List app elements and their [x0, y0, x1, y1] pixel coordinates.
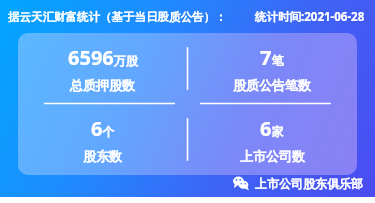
staticText: 股东数 [83, 148, 122, 164]
staticText: 据云天汇财富统计（基于当日股质公告）： [8, 10, 227, 24]
button[interactable]: 6家 [187, 104, 357, 175]
staticText: 统计时间:2021-06-28 [255, 9, 365, 25]
staticText: 6个 [91, 115, 115, 142]
staticText: 股质公告笔数 [233, 77, 311, 93]
staticText: 上市公司数 [240, 148, 305, 164]
button[interactable]: 7笔 [187, 33, 357, 104]
other: WeChat [233, 175, 249, 191]
button[interactable]: 6个 [18, 104, 187, 175]
staticText: 6家 [260, 115, 284, 142]
staticText: 7笔 [260, 44, 284, 71]
staticText: 6596万股 [68, 44, 138, 71]
staticText: 上市公司股东俱乐部 [255, 176, 363, 191]
staticText: 总质押股数 [70, 77, 135, 93]
button[interactable]: 6596万股 [18, 33, 187, 104]
button[interactable]: WeChat [233, 175, 363, 191]
